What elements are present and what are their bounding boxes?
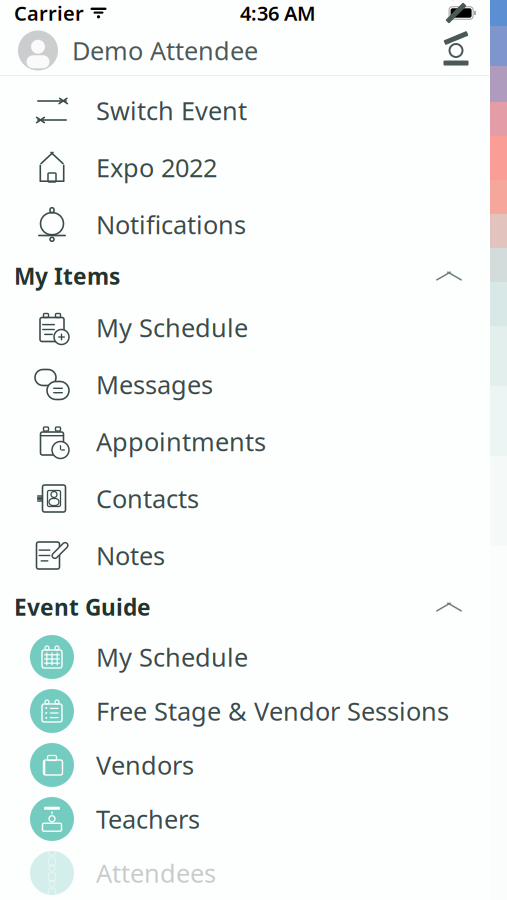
button[interactable]: Teachers bbox=[0, 792, 490, 846]
button[interactable]: Switch Event bbox=[0, 82, 490, 139]
staticText: Attendees bbox=[96, 856, 216, 890]
button[interactable]: My Schedule bbox=[0, 630, 490, 684]
staticText: Demo Attendee bbox=[72, 34, 258, 67]
staticText: Expo 2022 bbox=[96, 151, 217, 184]
staticText: My Schedule bbox=[96, 311, 248, 344]
button[interactable]: Notes bbox=[0, 527, 490, 584]
button[interactable]: Messages bbox=[0, 356, 490, 413]
button[interactable]: Attendees bbox=[0, 846, 490, 900]
staticText: My Items bbox=[14, 261, 120, 291]
staticText: Contacts bbox=[96, 482, 199, 515]
staticText: Appointments bbox=[96, 425, 266, 458]
button[interactable]: Appointments bbox=[0, 413, 490, 470]
button[interactable]: Expo 2022 bbox=[0, 139, 490, 196]
button[interactable]: Demo Attendee bbox=[0, 25, 258, 75]
button[interactable]: Event Guide section, collapse bbox=[0, 584, 490, 630]
staticText: Teachers bbox=[96, 802, 200, 836]
staticText: Event Guide bbox=[14, 592, 151, 622]
button[interactable]: My Items section, collapse bbox=[0, 253, 490, 299]
staticText: Messages bbox=[96, 368, 213, 401]
staticText: My Schedule bbox=[96, 640, 248, 674]
staticText: Switch Event bbox=[96, 94, 247, 127]
staticText: Vendors bbox=[96, 748, 194, 782]
staticText: Notes bbox=[96, 539, 165, 572]
button[interactable]: Free Stage & Vendor Sessions bbox=[0, 684, 490, 738]
button[interactable]: Contacts bbox=[0, 470, 490, 527]
staticText: Notifications bbox=[96, 208, 246, 241]
staticText: Free Stage & Vendor Sessions bbox=[96, 694, 449, 728]
button[interactable]: My Schedule bbox=[0, 299, 490, 356]
staticText: Carrier bbox=[14, 0, 84, 26]
button[interactable]: Vendors bbox=[0, 738, 490, 792]
button[interactable]: Settings bbox=[442, 26, 490, 74]
staticText: 4:36 AM bbox=[240, 0, 316, 26]
button[interactable]: Notifications bbox=[0, 196, 490, 253]
